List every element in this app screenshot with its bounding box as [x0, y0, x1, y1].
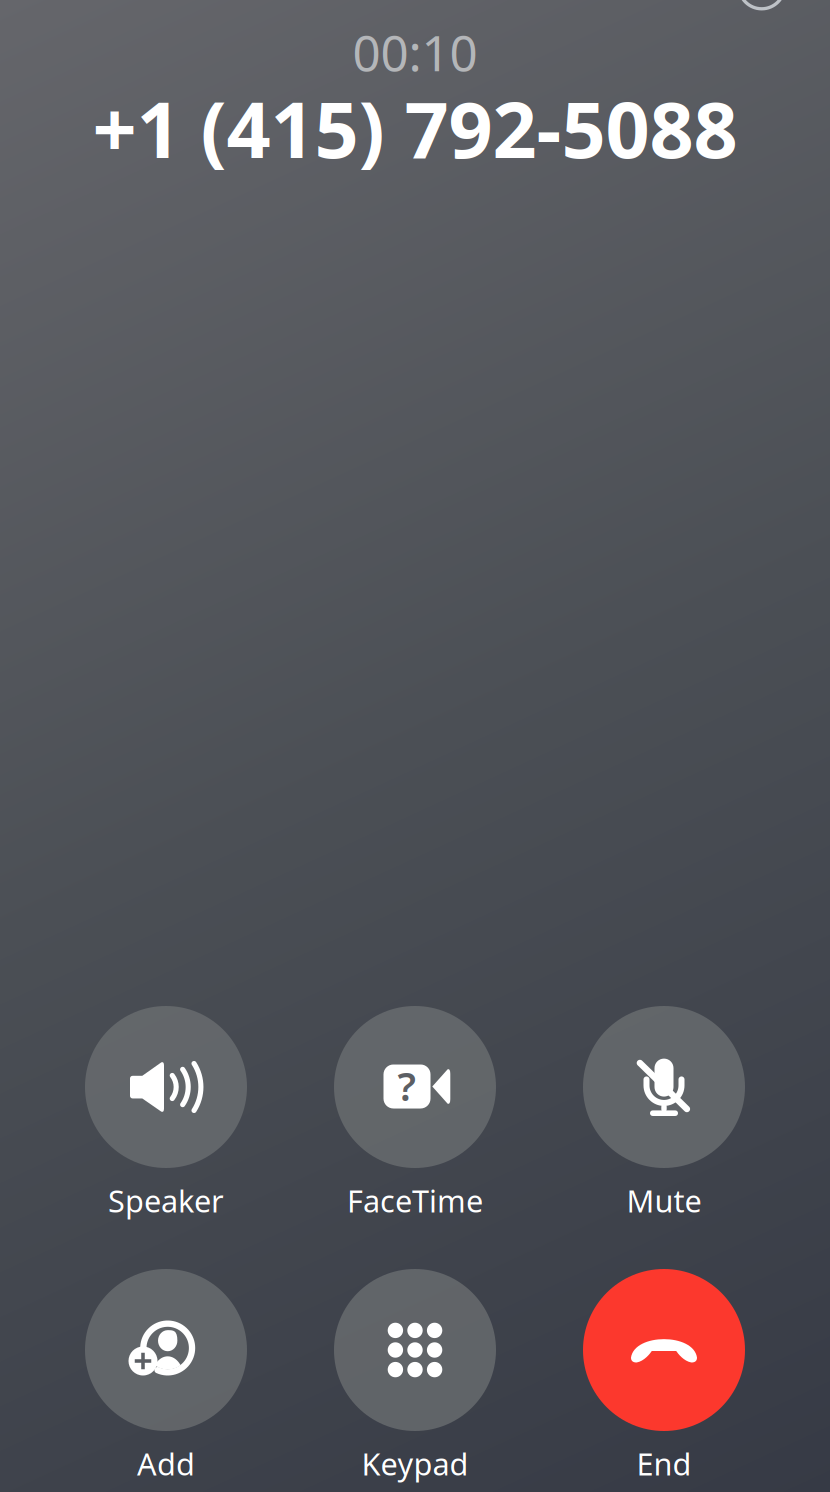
- staticText: Speaker: [108, 1180, 224, 1221]
- staticText: End: [636, 1443, 691, 1484]
- staticText: ?: [397, 1059, 415, 1112]
- staticText: Add: [137, 1443, 195, 1484]
- staticText: 00:10: [352, 19, 477, 85]
- button[interactable]: Add: [58, 1269, 274, 1480]
- staticText: Mute: [626, 1180, 701, 1221]
- button[interactable]: ?: [307, 1006, 523, 1217]
- button[interactable]: Speaker: [58, 1006, 274, 1217]
- staticText: +1 (415) 792-5088: [92, 77, 737, 179]
- staticText: FaceTime: [347, 1180, 483, 1221]
- button[interactable]: End: [556, 1269, 772, 1480]
- button[interactable]: Mute: [556, 1006, 772, 1217]
- staticText: Keypad: [361, 1443, 468, 1484]
- button[interactable]: Keypad: [307, 1269, 523, 1480]
